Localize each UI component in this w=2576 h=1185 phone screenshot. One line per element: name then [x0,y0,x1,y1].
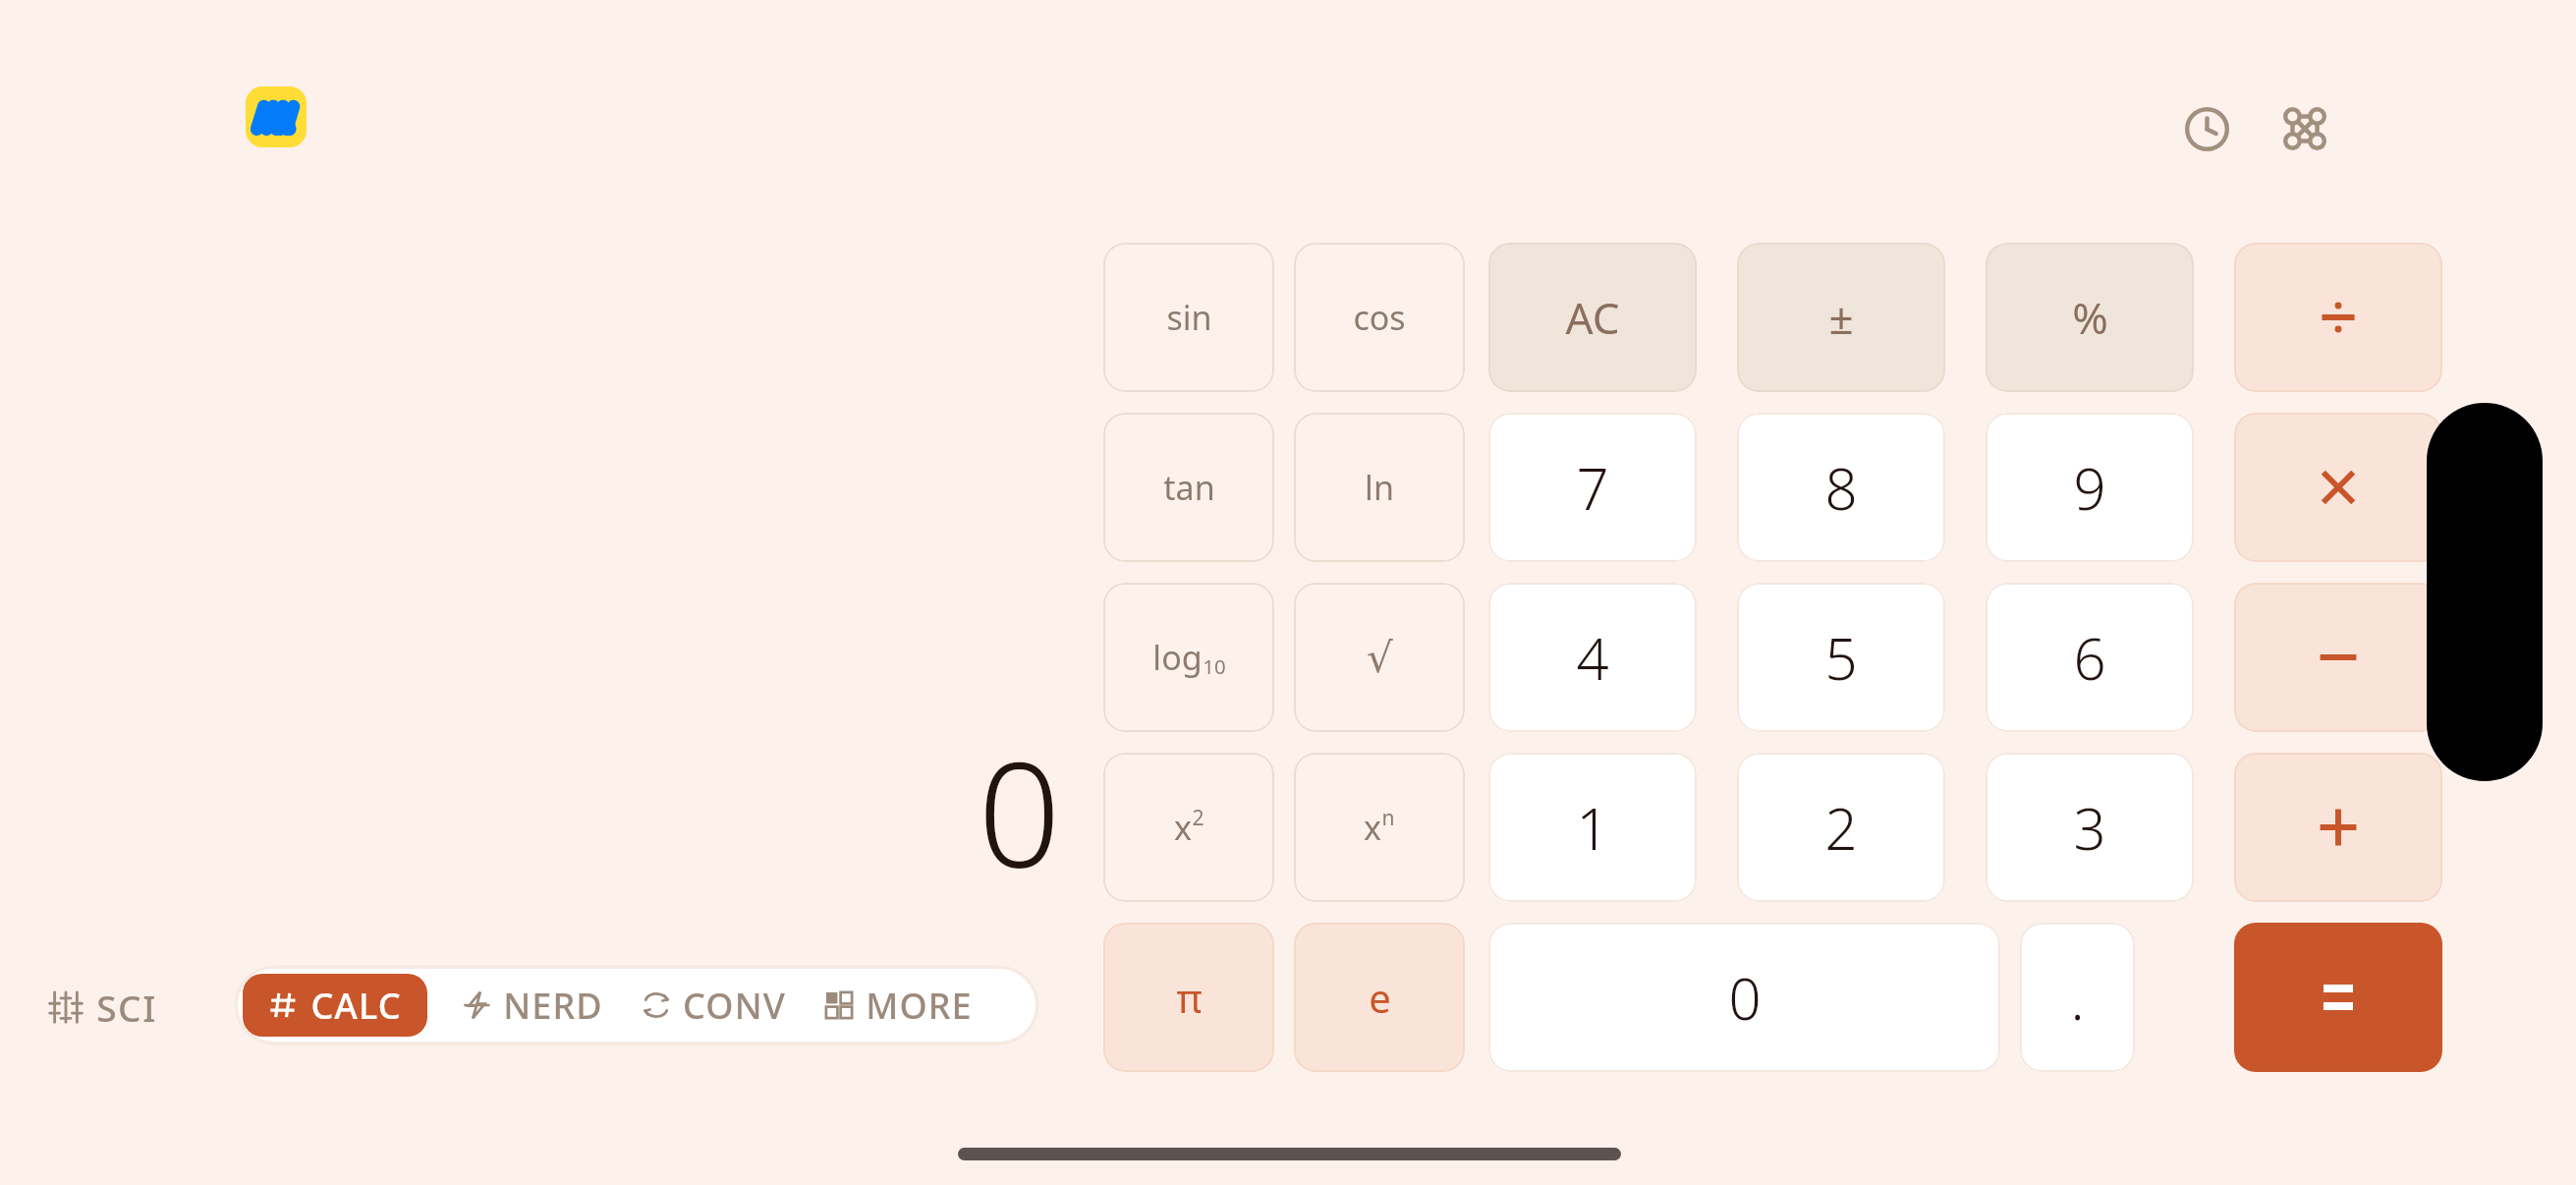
staticText: 0 [1728,959,1762,1037]
staticText: e [1369,971,1391,1024]
button[interactable]: Subtract [2234,583,2442,732]
staticText: 7 [1576,449,1609,527]
button[interactable]: Shortcuts [2274,98,2335,159]
staticText: SCI [96,983,157,1032]
button[interactable]: π [1103,923,1274,1072]
button[interactable]: 0 [1488,923,2000,1072]
button[interactable]: cos [1294,243,1465,392]
staticText: n [1381,803,1395,831]
staticText: 8 [1824,449,1858,527]
staticText: 6 [2073,619,2106,697]
staticText: cos [1353,295,1406,340]
staticText: π [1176,971,1203,1024]
staticText: 3 [2073,789,2106,867]
staticText: 0 [978,712,1061,879]
button[interactable]: sin [1103,243,1274,392]
button[interactable]: 9 [1986,413,2194,562]
staticText: CONV [683,982,786,1030]
staticText: 1 [1576,789,1609,867]
button[interactable]: 3 [1986,753,2194,902]
staticText: √ [1367,634,1393,682]
button[interactable]: ln [1294,413,1465,562]
button[interactable]: CALC [243,974,427,1037]
button[interactable]: Multiply [2234,413,2442,562]
staticText: 10 [1203,652,1226,680]
button[interactable]: log [1103,583,1274,732]
button[interactable]: Equals [2234,923,2442,1072]
button[interactable]: tan [1103,413,1274,562]
button[interactable]: MORE [817,974,979,1037]
staticText: 5 [1824,619,1858,697]
button[interactable]: 5 [1737,583,1945,732]
staticText: 2 [1824,789,1858,867]
button[interactable]: App logo [246,86,307,147]
staticText: % [2072,288,2108,347]
staticText: ± [1828,288,1854,347]
button[interactable]: Divide [2234,243,2442,392]
button[interactable]: e [1294,923,1465,1072]
button[interactable]: . [2020,923,2135,1072]
staticText: sin [1166,295,1212,340]
staticText: log [1152,635,1203,680]
button[interactable]: Add [2234,753,2442,902]
button[interactable]: x [1103,753,1274,902]
staticText: AC [1565,288,1620,347]
staticText: . [2070,959,2085,1037]
staticText: 9 [2073,449,2106,527]
button[interactable]: 2 [1737,753,1945,902]
button[interactable]: 1 [1488,753,1697,902]
staticText: 2 [1192,803,1204,831]
staticText: 4 [1576,619,1609,697]
staticText: NERD [503,982,603,1030]
button[interactable]: 8 [1737,413,1945,562]
button[interactable]: 6 [1986,583,2194,732]
button[interactable]: 7 [1488,413,1697,562]
button[interactable]: 4 [1488,583,1697,732]
staticText: x [1174,805,1192,850]
button[interactable]: ± [1737,243,1945,392]
staticText: tan [1163,465,1215,510]
staticText: x [1364,805,1381,850]
button[interactable]: History [2176,98,2237,159]
staticText: ln [1365,465,1394,510]
staticText: MORE [866,982,973,1030]
button[interactable]: CONV [635,974,792,1037]
button[interactable]: SCI [41,975,163,1040]
button[interactable]: % [1986,243,2194,392]
button[interactable]: √ [1294,583,1465,732]
button[interactable]: NERD [455,974,609,1037]
staticText: CALC [310,982,402,1030]
button[interactable]: AC [1488,243,1697,392]
button[interactable]: x [1294,753,1465,902]
